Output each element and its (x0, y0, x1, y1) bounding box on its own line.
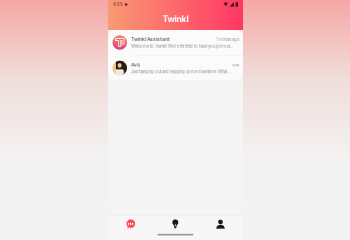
staticText: Ava (131, 62, 140, 68)
staticText: Just hanging out and enjoying some downt… (131, 69, 231, 74)
button[interactable]: Twinkl Assistant (108, 30, 243, 55)
staticText: Twinkl (162, 14, 188, 24)
button[interactable]: Profile (198, 216, 243, 233)
button[interactable]: Ava (108, 55, 243, 80)
staticText: now (232, 62, 239, 67)
button[interactable]: Chats (108, 216, 153, 233)
staticText: 1 minute ago (216, 37, 239, 42)
staticText: Welcome to Twinkl! We're thrilled to hav… (131, 44, 233, 49)
staticText: 4:55 (113, 2, 123, 7)
button[interactable]: Ideas (153, 216, 198, 233)
staticText: Twinkl Assistant (131, 36, 170, 42)
